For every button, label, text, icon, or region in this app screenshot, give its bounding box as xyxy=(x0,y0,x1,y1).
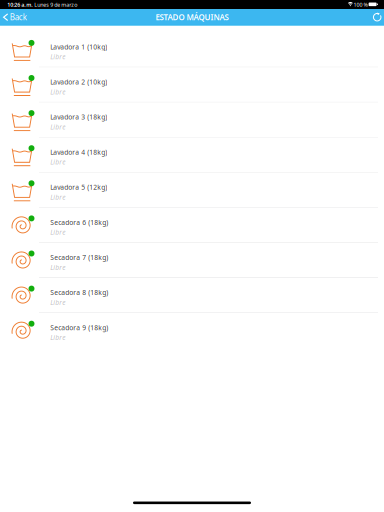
staticText: Libre xyxy=(50,228,65,237)
staticText: Libre xyxy=(50,52,65,61)
button[interactable]: Lavadora 4 (18kg) xyxy=(0,138,384,173)
button[interactable]: Lavadora 5 (12kg) xyxy=(0,173,384,208)
staticText: ESTADO MÁQUINAS xyxy=(155,12,228,22)
staticText: Libre xyxy=(50,158,65,166)
staticText: Secadora 9 (18kg) xyxy=(50,323,108,332)
staticText: Lunes 9 de marzo xyxy=(34,1,77,8)
staticText: Lavadora 5 (12kg) xyxy=(50,183,107,192)
button[interactable]: Secadora 6 (18kg) xyxy=(0,208,384,243)
staticText: 10:26 a. m. xyxy=(7,1,32,8)
staticText: Libre xyxy=(50,298,65,307)
staticText: Secadora 8 (18kg) xyxy=(50,288,108,297)
button[interactable]: Lavadora 1 (10kg) xyxy=(0,32,384,67)
staticText: 100 % xyxy=(354,1,368,8)
staticText: Libre xyxy=(50,333,65,342)
button[interactable]: Secadora 8 (18kg) xyxy=(0,278,384,313)
button[interactable]: Back xyxy=(0,9,33,25)
staticText: Lavadora 3 (18kg) xyxy=(50,113,107,121)
staticText: Lavadora 2 (10kg) xyxy=(50,77,107,86)
staticText: Libre xyxy=(50,87,65,96)
button[interactable]: Lavadora 3 (18kg) xyxy=(0,102,384,138)
button[interactable]: Secadora 7 (18kg) xyxy=(0,243,384,278)
staticText: Lavadora 4 (18kg) xyxy=(50,148,107,157)
staticText: Lavadora 1 (10kg) xyxy=(50,42,107,51)
staticText: Secadora 7 (18kg) xyxy=(50,253,108,262)
staticText: Secadora 6 (18kg) xyxy=(50,218,108,227)
button[interactable]: Secadora 9 (18kg) xyxy=(0,313,384,348)
button[interactable]: Refresh xyxy=(368,9,384,25)
button[interactable]: Lavadora 2 (10kg) xyxy=(0,67,384,102)
staticText: Libre xyxy=(50,263,65,272)
staticText: Libre xyxy=(50,122,65,131)
staticText: Libre xyxy=(50,193,65,202)
staticText: Back xyxy=(10,12,27,22)
